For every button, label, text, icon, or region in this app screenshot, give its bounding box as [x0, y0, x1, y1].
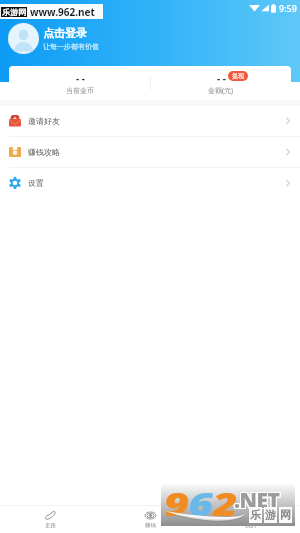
staticText: 9	[164, 482, 188, 524]
button[interactable]: - -	[9, 66, 150, 100]
staticText: 2	[213, 482, 237, 524]
staticText: 赚钱攻略	[28, 147, 60, 157]
staticText: .NET	[233, 486, 279, 515]
button[interactable]: 赚钱攻略	[0, 137, 300, 167]
staticText: .NET	[235, 487, 281, 516]
staticText: .NET	[233, 485, 279, 514]
button[interactable]: 设置	[0, 168, 300, 198]
staticText: www.962.net	[30, 5, 95, 19]
staticText: .NET	[234, 486, 280, 515]
button[interactable]: 赚钱	[100, 506, 200, 533]
button[interactable]: 走路	[0, 506, 100, 533]
staticText: 6	[188, 482, 213, 524]
staticText: .NET	[234, 485, 280, 514]
staticText: 邀请好友	[28, 116, 60, 126]
staticText: .NET	[235, 486, 281, 515]
staticText: 9:59	[279, 2, 297, 14]
staticText: 赚钱	[145, 522, 156, 529]
staticText: 走路	[45, 522, 56, 529]
staticText: 设置	[28, 178, 44, 188]
button[interactable]: 邀请好友	[0, 106, 300, 136]
staticText: 我的	[245, 522, 256, 529]
staticText: .NET	[233, 487, 279, 516]
staticText: 让每一步都有价值	[43, 42, 99, 51]
staticText: - -	[76, 71, 85, 85]
staticText: 网	[280, 508, 291, 522]
staticText: .NET	[235, 485, 281, 514]
staticText: 乐	[250, 508, 261, 522]
staticText: 提现	[232, 72, 244, 80]
staticText: - -	[217, 71, 226, 85]
staticText: .NET	[234, 487, 280, 516]
button[interactable]: 提现	[228, 71, 248, 81]
button[interactable]: - -	[150, 66, 291, 100]
staticText: 游	[265, 508, 276, 522]
staticText: 当前金币	[66, 86, 94, 95]
staticText: 乐游网	[2, 7, 26, 17]
staticText: 点击登录	[43, 26, 87, 40]
button[interactable]: 我的	[200, 506, 300, 533]
staticText: 金额(元)	[208, 86, 234, 96]
